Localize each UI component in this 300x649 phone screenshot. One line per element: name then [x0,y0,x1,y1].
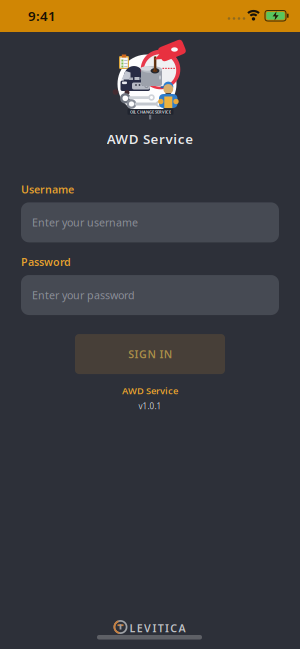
staticText: Username [21,182,74,196]
staticText: 9:41 [28,7,56,25]
staticText: LEVITICA [129,621,186,635]
button[interactable]: Enter your password [21,275,279,315]
button[interactable]: Enter your username [21,202,279,242]
staticText: SIGN IN [128,347,172,361]
staticText: OIL CHANGE SERVICE [130,109,171,114]
staticText: Enter your password [32,288,135,302]
button[interactable]: SIGN IN [75,334,225,374]
staticText: AWD Service [107,130,193,148]
staticText: AWD Service [122,384,178,397]
staticText: v1.0.1 [138,401,161,411]
staticText: Password [21,255,71,269]
staticText: Enter your username [32,215,138,229]
